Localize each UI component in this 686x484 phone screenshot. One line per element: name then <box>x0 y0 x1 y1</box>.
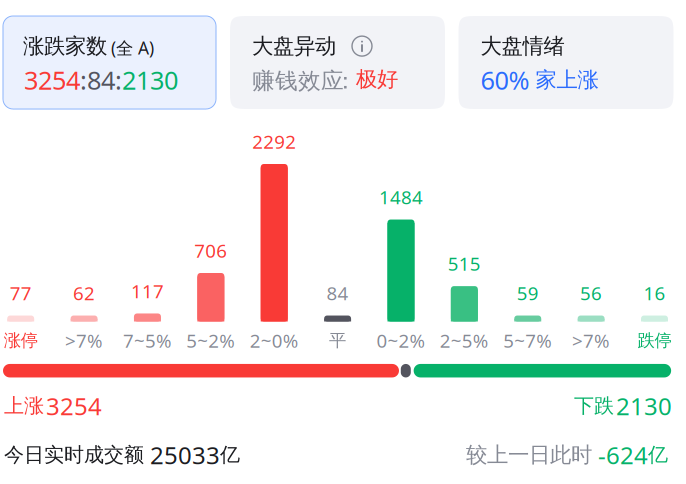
staticText: 515 <box>448 251 481 276</box>
button[interactable]: 59 <box>0 0 686 484</box>
button[interactable]: 16 <box>0 0 686 484</box>
staticText: 2~5% <box>440 328 489 353</box>
staticText: 62 <box>73 281 95 305</box>
staticText: 平 <box>329 330 346 351</box>
staticText: 77 <box>10 281 32 305</box>
button[interactable]: 77 <box>0 0 686 484</box>
staticText: 家上涨 <box>529 67 598 93</box>
button[interactable]: 2292 <box>0 0 686 484</box>
staticText: 2130 <box>122 63 178 97</box>
staticText: 60% <box>480 63 529 97</box>
staticText: 84 <box>327 281 349 305</box>
staticText: 2292 <box>252 129 296 154</box>
button[interactable]: 1484 <box>0 0 686 484</box>
staticText: 59 <box>517 281 539 305</box>
staticText: -624 <box>598 439 648 471</box>
staticText: 0~2% <box>376 328 425 353</box>
button[interactable]: 117 <box>0 0 686 484</box>
button[interactable]: 大盘情绪 <box>458 16 673 109</box>
button[interactable]: 大盘异动 <box>230 16 445 109</box>
staticText: >7% <box>65 328 103 353</box>
button[interactable]: 56 <box>0 0 686 484</box>
staticText: : <box>80 63 87 97</box>
staticText: 5~7% <box>503 328 552 353</box>
staticText: 25033 <box>150 439 220 471</box>
staticText: >7% <box>572 328 610 353</box>
staticText: 下跌 <box>574 394 614 418</box>
button[interactable]: 涨跌家数 <box>3 16 216 109</box>
button[interactable]: 84 <box>0 0 686 484</box>
staticText: ： <box>334 67 357 95</box>
button[interactable]: 706 <box>0 0 686 484</box>
staticText: 1484 <box>379 185 423 209</box>
staticText: 大盘异动 <box>252 33 336 59</box>
staticText: 赚钱效应 <box>252 67 344 95</box>
staticText: 7~5% <box>123 328 172 353</box>
staticText: 3254 <box>46 390 102 422</box>
staticText: (全 A) <box>111 36 154 59</box>
staticText: 5~2% <box>186 328 235 353</box>
staticText: 涨跌家数 <box>23 33 107 59</box>
button[interactable]: 515 <box>0 0 686 484</box>
staticText: : <box>115 63 122 97</box>
staticText: 706 <box>194 238 227 263</box>
staticText: 较上一日此时 <box>466 442 598 468</box>
staticText: 极好 <box>356 66 398 92</box>
button[interactable]: 62 <box>0 0 686 484</box>
staticText: 3254 <box>24 63 80 97</box>
staticText: 上涨 <box>4 394 44 418</box>
staticText: 亿 <box>220 443 240 467</box>
staticText: 2130 <box>616 390 672 422</box>
staticText: 亿 <box>648 443 668 467</box>
button[interactable]: 关于大盘异动 <box>352 36 372 56</box>
staticText: 大盘情绪 <box>480 33 564 59</box>
staticText: 117 <box>131 279 164 303</box>
staticText: 16 <box>643 281 665 305</box>
staticText: 2~0% <box>250 328 299 353</box>
staticText: 跌停 <box>637 330 671 351</box>
staticText: 84 <box>87 63 115 97</box>
staticText: 56 <box>580 281 602 305</box>
staticText: 涨停 <box>4 330 38 351</box>
staticText: 今日实时成交额 <box>4 443 150 467</box>
